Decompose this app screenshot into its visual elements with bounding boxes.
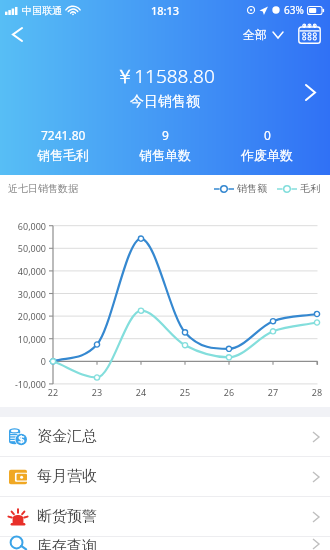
staticText: 库存查询 (37, 537, 97, 550)
staticText: 23 (85, 386, 109, 398)
staticText: 9 (162, 127, 169, 143)
button[interactable]: 断货预警 (0, 497, 330, 536)
staticText: 资金汇总 (37, 427, 97, 446)
button[interactable]: 库存查询 (0, 537, 330, 550)
staticText: 18:13 (151, 3, 180, 18)
button[interactable]: 全部 (238, 21, 288, 48)
staticText: 毛利 (300, 182, 320, 195)
button[interactable]: 返回 (0, 20, 34, 48)
staticText: 24 (129, 386, 153, 398)
staticText: 26 (217, 386, 241, 398)
staticText: 60,000 (0, 220, 46, 232)
staticText: 30,000 (0, 288, 46, 300)
staticText: ￥11588.80 (0, 63, 330, 89)
staticText: 63% (284, 3, 304, 17)
staticText: 今日销售额 (0, 93, 330, 111)
staticText: 28 (305, 386, 329, 398)
staticText: 50,000 (0, 242, 46, 254)
staticText: 每月营收 (37, 467, 97, 486)
staticText: 作废单数 (241, 147, 293, 163)
staticText: 0 (0, 355, 46, 367)
staticText: 25 (173, 386, 197, 398)
staticText: 27 (261, 386, 285, 398)
staticText: -10,000 (0, 378, 46, 390)
staticText: 10,000 (0, 333, 46, 345)
staticText: 22 (41, 386, 65, 398)
staticText: 销售单数 (139, 147, 191, 163)
button[interactable]: 资金汇总 (0, 417, 330, 456)
staticText: 销售毛利 (37, 147, 89, 163)
staticText: 20,000 (0, 310, 46, 322)
staticText: 销售额 (237, 182, 267, 195)
staticText: 40,000 (0, 265, 46, 277)
button[interactable]: 每月营收 (0, 457, 330, 496)
staticText: 7241.80 (41, 127, 86, 143)
staticText: 断货预警 (37, 507, 97, 526)
button[interactable]: 日历 (294, 20, 324, 48)
staticText: 中国联通 (22, 4, 62, 17)
button[interactable]: 详情 (296, 78, 324, 106)
staticText: 全部 (243, 27, 267, 42)
staticText: 0 (264, 127, 271, 143)
staticText: 近七日销售数据 (8, 182, 78, 195)
